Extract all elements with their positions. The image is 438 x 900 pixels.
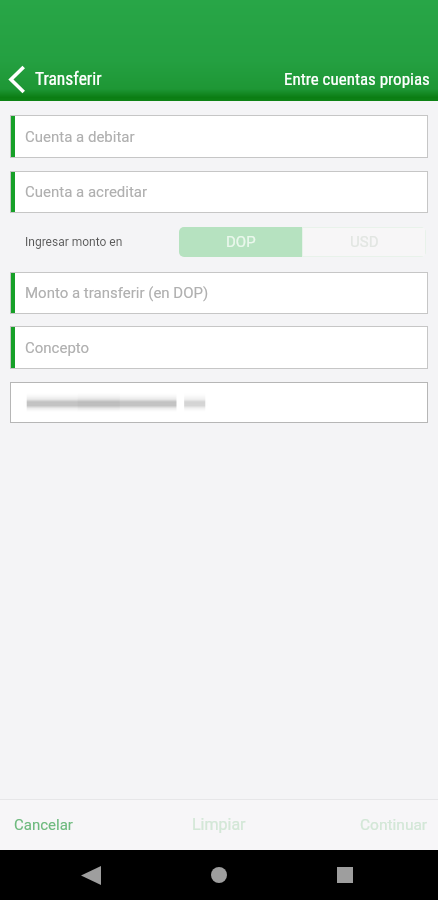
button[interactable]: Continuar xyxy=(292,799,438,850)
staticText: Cuenta a acreditar xyxy=(25,183,148,201)
button[interactable]: USD xyxy=(302,227,426,257)
staticText: Cancelar xyxy=(14,816,73,834)
staticText: DOP xyxy=(226,233,256,251)
staticText: USD xyxy=(350,233,379,251)
button[interactable]: Cuenta a debitar xyxy=(10,115,428,158)
button[interactable]: Back xyxy=(0,64,106,94)
button[interactable]: Back xyxy=(70,850,112,900)
button[interactable]: Recent apps xyxy=(324,850,366,900)
staticText: Ingresar monto en xyxy=(25,235,123,249)
button[interactable]: Home xyxy=(198,850,240,900)
staticText: Transferir xyxy=(35,69,102,90)
button[interactable]: DOP xyxy=(179,227,302,257)
staticText: Concepto xyxy=(25,339,90,357)
staticText: Limpiar xyxy=(192,815,246,834)
staticText: Cuenta a debitar xyxy=(25,128,135,146)
button[interactable]: Limpiar xyxy=(146,799,292,850)
button[interactable]: Monto a transferir (en DOP) xyxy=(10,272,428,314)
button[interactable] xyxy=(10,382,428,423)
button[interactable]: Cuenta a acreditar xyxy=(10,171,428,213)
button[interactable]: Concepto xyxy=(10,326,428,369)
staticText: Monto a transferir (en DOP) xyxy=(25,284,209,302)
staticText: Continuar xyxy=(360,816,428,834)
staticText: Entre cuentas propias xyxy=(284,69,430,89)
button[interactable]: Cancelar xyxy=(0,799,146,850)
